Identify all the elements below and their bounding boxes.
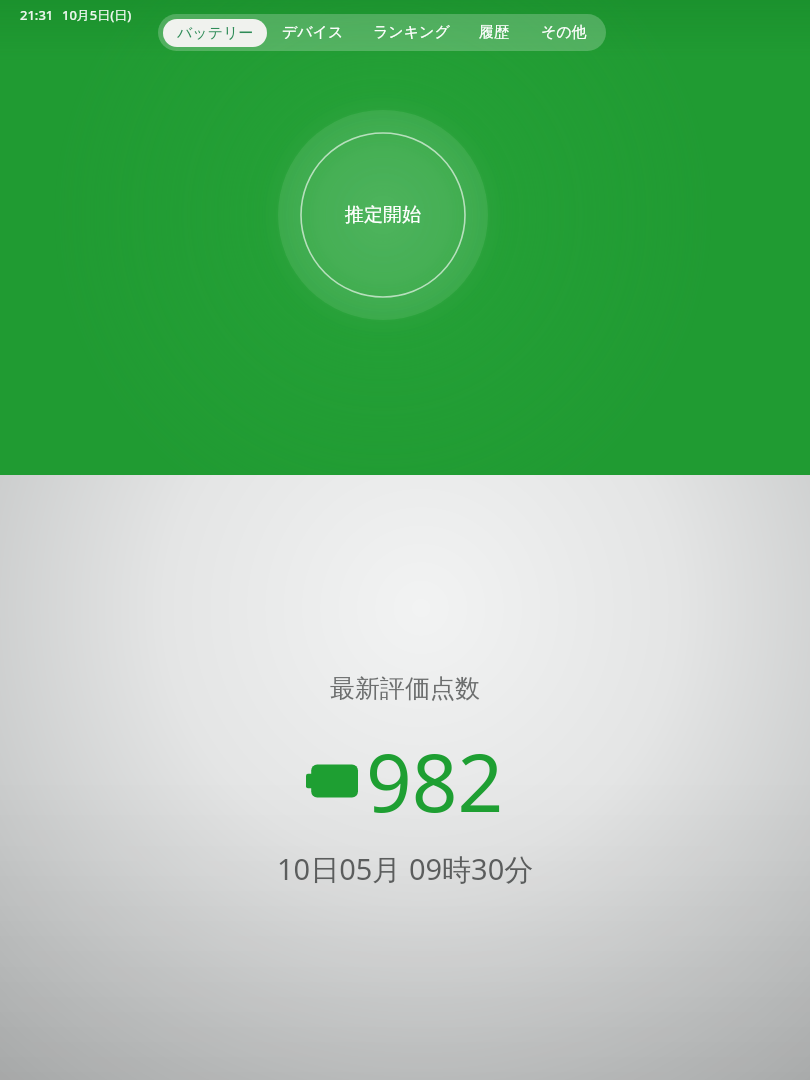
staticText: その他: [541, 23, 587, 42]
staticText: バッテリー: [177, 24, 254, 43]
button[interactable]: 履歴: [463, 14, 525, 51]
staticText: 21:31: [20, 6, 54, 24]
button[interactable]: その他: [525, 14, 603, 51]
staticText: ランキング: [373, 23, 450, 42]
other: Battery: [306, 761, 358, 801]
staticText: 履歴: [479, 23, 509, 42]
staticText: 推定開始: [345, 203, 421, 227]
staticText: 10日05月 09時30分: [277, 849, 534, 889]
staticText: デバイス: [282, 23, 344, 42]
staticText: 982: [366, 726, 504, 835]
button[interactable]: バッテリー: [163, 19, 267, 47]
button[interactable]: ランキング: [359, 14, 463, 51]
button[interactable]: デバイス: [267, 14, 359, 51]
staticText: 最新評価点数: [330, 673, 480, 704]
button[interactable]: 推定開始: [258, 90, 508, 340]
staticText: 10月5日(日): [62, 6, 132, 24]
